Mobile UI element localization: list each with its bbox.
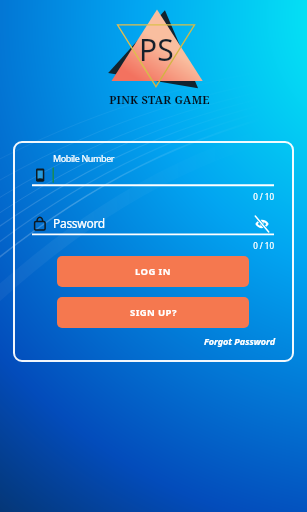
staticText: PS — [139, 29, 174, 70]
staticText: 0 / 10 — [232, 240, 274, 251]
staticText: 0 / 10 — [232, 191, 274, 202]
button[interactable]: Toggle password visibility — [251, 213, 273, 235]
staticText: LOG IN — [135, 265, 171, 278]
staticText: Mobile Number — [53, 152, 115, 164]
button[interactable]: Forgot Password — [173, 335, 275, 347]
button[interactable]: LOG IN — [57, 256, 249, 287]
staticText: SIGN UP? — [130, 306, 177, 319]
button[interactable]: SIGN UP? — [57, 297, 249, 328]
staticText: PINK STAR GAME — [6, 92, 307, 107]
staticText: Password — [53, 215, 105, 231]
